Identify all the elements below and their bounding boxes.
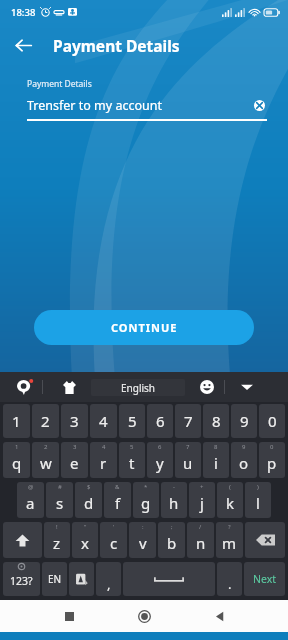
staticText: 18:38 bbox=[11, 6, 36, 19]
button[interactable]: Back bbox=[204, 601, 234, 631]
staticText: ( bbox=[229, 483, 231, 491]
staticText: j bbox=[200, 493, 204, 513]
button[interactable]: Themes bbox=[58, 376, 80, 398]
button[interactable]: 9 bbox=[231, 442, 257, 478]
staticText: 4 bbox=[102, 443, 106, 451]
button[interactable]: Clear text bbox=[249, 95, 269, 115]
button[interactable]: Emoji bbox=[196, 376, 218, 398]
staticText: 3 bbox=[73, 443, 77, 451]
staticText: v bbox=[139, 533, 147, 553]
button[interactable]: ; bbox=[158, 522, 185, 558]
button[interactable]: ' bbox=[100, 522, 127, 558]
staticText: - bbox=[173, 483, 175, 491]
button[interactable]: EN bbox=[42, 562, 67, 596]
button[interactable]: GO keyboard bbox=[13, 376, 35, 398]
button[interactable]: 1 bbox=[3, 404, 30, 438]
staticText: @ bbox=[28, 483, 34, 491]
staticText: n bbox=[196, 533, 206, 553]
button[interactable]: 3 bbox=[61, 404, 88, 438]
staticText: e bbox=[70, 453, 79, 473]
button[interactable]: Recents bbox=[54, 601, 84, 631]
button[interactable]: & bbox=[104, 482, 131, 518]
staticText: ) bbox=[257, 483, 259, 491]
staticText: Next bbox=[253, 572, 277, 586]
button[interactable]: ? bbox=[216, 522, 243, 558]
button[interactable]: / bbox=[187, 522, 214, 558]
staticText: h bbox=[169, 493, 179, 513]
staticText: o bbox=[239, 453, 249, 473]
staticText: Trensfer to my account bbox=[27, 97, 249, 114]
button[interactable]: , bbox=[96, 562, 121, 596]
button[interactable]: $ bbox=[75, 482, 102, 518]
staticText: ! bbox=[56, 523, 58, 531]
button[interactable]: 0 bbox=[259, 404, 285, 438]
button[interactable]: Next bbox=[244, 562, 285, 596]
button[interactable]: ( bbox=[217, 482, 243, 518]
staticText: 0 bbox=[270, 443, 274, 451]
button[interactable]: ) bbox=[245, 482, 271, 518]
staticText: 1 bbox=[12, 411, 21, 431]
staticText: i bbox=[214, 453, 218, 473]
button[interactable]: 1 bbox=[3, 442, 30, 478]
button[interactable]: 5 bbox=[119, 442, 145, 478]
staticText: 2 bbox=[44, 443, 48, 451]
staticText: English bbox=[121, 381, 156, 395]
staticText: ; bbox=[171, 523, 173, 531]
button[interactable]: Clipboard bbox=[69, 562, 94, 596]
button[interactable]: : bbox=[129, 522, 156, 558]
button[interactable]: 9 bbox=[231, 404, 257, 438]
button[interactable]: Space bbox=[123, 562, 215, 596]
staticText: g bbox=[141, 493, 151, 513]
button[interactable]: 0 bbox=[259, 442, 285, 478]
button[interactable]: 4 bbox=[90, 404, 117, 438]
button[interactable]: Numbers and symbols bbox=[3, 562, 40, 596]
button[interactable]: - bbox=[161, 482, 187, 518]
button[interactable]: Hide keyboard bbox=[236, 376, 258, 398]
button[interactable]: 6 bbox=[147, 404, 173, 438]
button[interactable]: * bbox=[133, 482, 159, 518]
button[interactable]: CONTINUE bbox=[34, 310, 254, 345]
button[interactable]: Backspace bbox=[245, 522, 285, 558]
button[interactable]: 5 bbox=[119, 404, 145, 438]
staticText: k bbox=[226, 493, 235, 513]
staticText: : bbox=[142, 523, 144, 531]
staticText: 4 bbox=[99, 411, 108, 431]
button[interactable]: # bbox=[46, 482, 73, 518]
button[interactable]: Back bbox=[4, 26, 42, 64]
staticText: 9 bbox=[242, 443, 246, 451]
staticText: EN bbox=[48, 572, 62, 586]
staticText: . bbox=[228, 575, 232, 593]
staticText: Payment Details bbox=[27, 78, 92, 90]
button[interactable]: 2 bbox=[32, 404, 59, 438]
button[interactable]: " bbox=[72, 522, 98, 558]
staticText: x bbox=[81, 533, 89, 553]
staticText: CONTINUE bbox=[111, 320, 178, 335]
button[interactable]: @ bbox=[17, 482, 44, 518]
button[interactable]: 7 bbox=[175, 442, 201, 478]
staticText: r bbox=[100, 453, 107, 473]
button[interactable]: 7 bbox=[175, 404, 201, 438]
staticText: / bbox=[199, 523, 202, 531]
staticText: " bbox=[84, 523, 87, 531]
button[interactable]: 8 bbox=[203, 442, 229, 478]
staticText: 7 bbox=[186, 443, 190, 451]
button[interactable]: . bbox=[217, 562, 242, 596]
staticText: ? bbox=[228, 523, 231, 531]
button[interactable]: + bbox=[189, 482, 215, 518]
button[interactable]: 4 bbox=[90, 442, 117, 478]
staticText: , bbox=[107, 575, 111, 593]
staticText: ' bbox=[113, 523, 115, 531]
button[interactable]: English bbox=[91, 379, 185, 396]
staticText: 9 bbox=[240, 411, 249, 431]
button[interactable]: 8 bbox=[203, 404, 229, 438]
button[interactable]: Shift bbox=[3, 522, 42, 558]
button[interactable]: Home bbox=[129, 601, 159, 631]
staticText: 1 bbox=[15, 443, 19, 451]
button[interactable]: 3 bbox=[61, 442, 88, 478]
staticText: d bbox=[84, 493, 94, 513]
staticText: # bbox=[58, 483, 62, 491]
button[interactable]: 2 bbox=[32, 442, 59, 478]
staticText: Payment Details bbox=[53, 35, 180, 56]
button[interactable]: ! bbox=[44, 522, 70, 558]
button[interactable]: 6 bbox=[147, 442, 173, 478]
